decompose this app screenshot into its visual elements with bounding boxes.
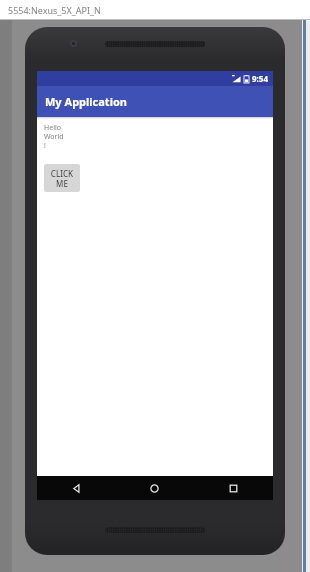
button[interactable]: Recent apps [194, 476, 273, 500]
staticText: CLICK ME [46, 168, 78, 189]
staticText: 5554:Nexus_5X_API_N [8, 4, 101, 16]
staticText: Hello World ! [44, 123, 64, 150]
staticText: 9:54 [252, 73, 268, 84]
button[interactable]: Home [115, 476, 194, 500]
staticText: My Application [45, 94, 127, 109]
button[interactable]: Back [37, 476, 115, 500]
button[interactable]: CLICK ME [44, 164, 80, 192]
